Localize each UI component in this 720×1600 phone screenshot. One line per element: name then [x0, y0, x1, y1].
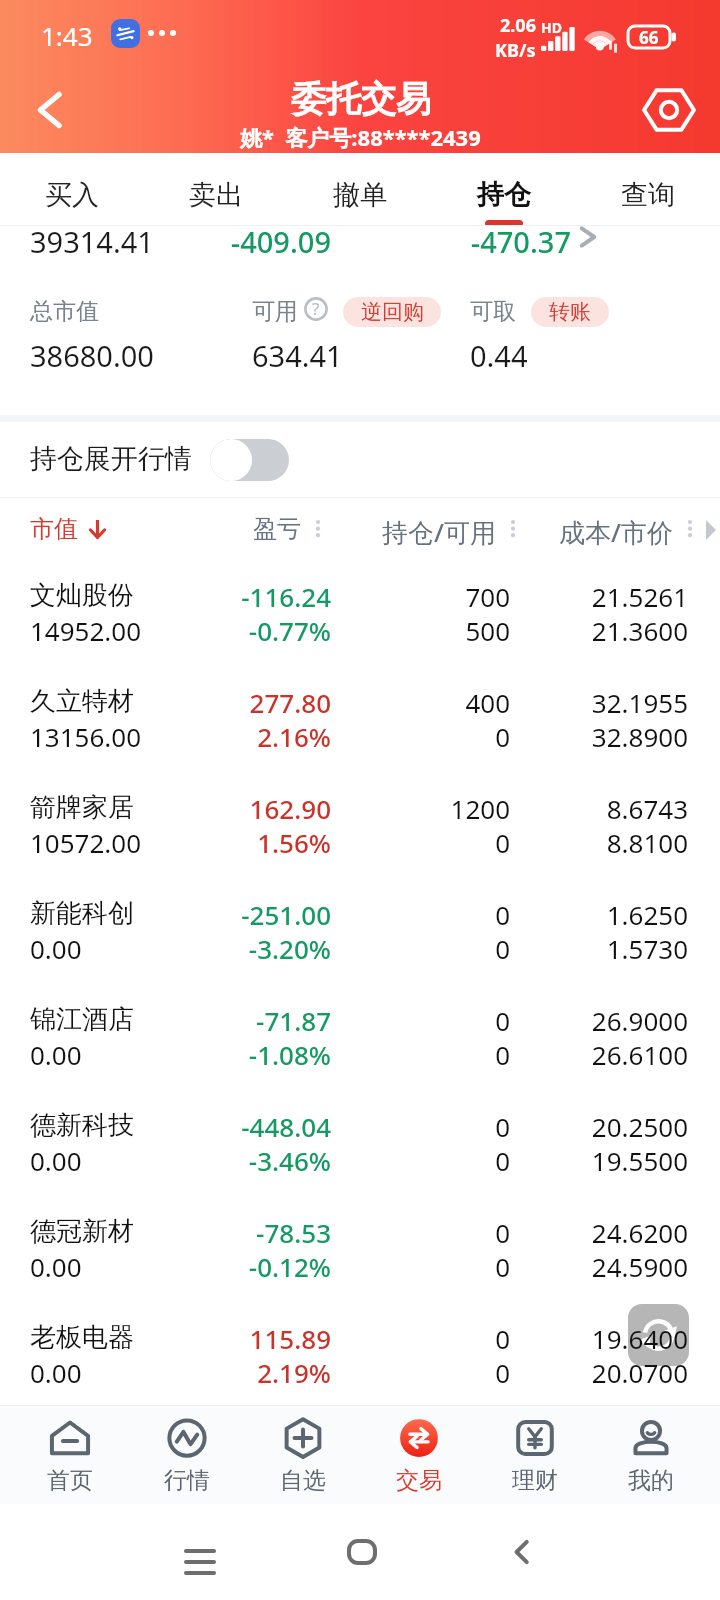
staticText: 634.41 — [252, 336, 343, 370]
staticText: 新能科创 — [30, 897, 134, 929]
button[interactable]: 锦江酒店 — [0, 979, 720, 1085]
staticText: -78.53 — [0, 1215, 331, 1247]
staticText: 0 — [0, 719, 510, 751]
staticText: -116.24 — [0, 579, 331, 611]
staticText: 19.5500 — [0, 1143, 688, 1175]
button[interactable]: 箭牌家居 — [0, 767, 720, 873]
staticText: -409.09 — [0, 222, 331, 256]
staticText: 1.56% — [0, 825, 331, 857]
staticText: 21.5261 — [0, 579, 688, 611]
button[interactable]: 文灿股份 — [0, 555, 720, 661]
staticText: 0.00 — [30, 1037, 82, 1069]
staticText: 0.44 — [470, 336, 528, 370]
button[interactable]: 我的 — [593, 1405, 709, 1504]
staticText: 10572.00 — [30, 825, 142, 857]
staticText: 0 — [0, 1249, 510, 1281]
staticText: 自选 — [280, 1466, 326, 1495]
staticText: 交易 — [396, 1466, 442, 1495]
staticText: 市值 — [30, 514, 78, 544]
staticText: 19.6400 — [0, 1321, 688, 1353]
staticText: 500 — [0, 613, 510, 645]
staticText: -3.20% — [0, 931, 331, 963]
staticText: 0.00 — [30, 931, 82, 963]
staticText: 行情 — [164, 1466, 210, 1495]
button[interactable]: Home — [322, 1504, 402, 1600]
staticText: 1200 — [0, 791, 510, 823]
staticText: 委托交易 — [291, 77, 431, 121]
staticText: 66 — [639, 26, 659, 48]
staticText: 理财 — [512, 1466, 558, 1495]
button[interactable]: 行情 — [128, 1405, 245, 1504]
button[interactable]: Back — [482, 1504, 562, 1600]
staticText: 2.19% — [0, 1355, 331, 1387]
staticText: 14952.00 — [30, 613, 142, 645]
button[interactable]: 逆回购 — [343, 297, 441, 327]
staticText: -470.37 — [0, 222, 571, 256]
staticText: 162.90 — [0, 791, 331, 823]
staticText: 持仓展开行情 — [30, 442, 192, 476]
button[interactable]: 买入 — [0, 153, 144, 225]
button[interactable]: 理财 — [477, 1405, 593, 1504]
staticText: 撤单 — [333, 178, 387, 212]
staticText: 德冠新材 — [30, 1215, 134, 1247]
staticText: KB/s — [495, 38, 536, 63]
button[interactable]: 久立特材 — [0, 661, 720, 767]
staticText: 持仓/可用 — [0, 514, 496, 550]
staticText: 文灿股份 — [30, 579, 134, 611]
staticText: 0 — [0, 931, 510, 963]
staticText: -1.08% — [0, 1037, 331, 1069]
staticText: 总市值 — [30, 297, 99, 326]
staticText: 32.8900 — [0, 719, 688, 751]
staticText: 老板电器 — [30, 1321, 134, 1353]
staticText: -251.00 — [0, 897, 331, 929]
button[interactable]: 查询 — [576, 153, 720, 225]
staticText: 2.06 — [500, 13, 536, 38]
staticText: 可取 — [470, 297, 516, 326]
button[interactable]: 自选 — [245, 1405, 361, 1504]
staticText: 39314.41 — [30, 222, 154, 256]
staticText: 8.8100 — [0, 825, 688, 857]
staticText: 久立特材 — [30, 685, 134, 717]
staticText: 锦江酒店 — [30, 1003, 134, 1035]
staticText: 0.00 — [30, 1249, 82, 1281]
staticText: 持仓 — [477, 178, 531, 212]
staticText: HD — [541, 18, 562, 37]
button[interactable] — [210, 439, 289, 481]
staticText: 21.3600 — [0, 613, 688, 645]
button[interactable]: Back — [20, 79, 82, 141]
button[interactable]: 持仓 — [432, 153, 576, 225]
staticText: 0 — [0, 1355, 510, 1387]
button[interactable]: 转账 — [531, 297, 609, 327]
staticText: 0.00 — [30, 1355, 82, 1387]
staticText: 0 — [0, 1109, 510, 1141]
staticText: 38680.00 — [30, 336, 154, 370]
button[interactable]: 撤单 — [288, 153, 432, 225]
staticText: 26.6100 — [0, 1037, 688, 1069]
button[interactable]: Settings — [642, 83, 696, 137]
staticText: 115.89 — [0, 1321, 331, 1353]
staticText: 盈亏 — [0, 514, 301, 544]
staticText: 400 — [0, 685, 510, 717]
staticText: -3.46% — [0, 1143, 331, 1175]
button[interactable]: 老板电器 — [0, 1297, 720, 1403]
button[interactable]: 新能科创 — [0, 873, 720, 979]
button[interactable]: Refresh — [628, 1304, 689, 1366]
staticText: 24.5900 — [0, 1249, 688, 1281]
button[interactable]: 卖出 — [144, 153, 288, 225]
button[interactable]: Recents — [160, 1504, 240, 1600]
staticText: 逆回购 — [361, 299, 424, 325]
staticText: 箭牌家居 — [30, 791, 134, 823]
staticText: 20.2500 — [0, 1109, 688, 1141]
staticText: -0.12% — [0, 1249, 331, 1281]
staticText: 0 — [0, 1037, 510, 1069]
staticText: 277.80 — [0, 685, 331, 717]
button[interactable]: 德冠新材 — [0, 1191, 720, 1297]
staticText: 1.6250 — [0, 897, 688, 929]
staticText: -71.87 — [0, 1003, 331, 1035]
staticText: 0 — [0, 1321, 510, 1353]
button[interactable]: 首页 — [11, 1405, 128, 1504]
staticText: 20.0700 — [0, 1355, 688, 1387]
staticText: 0 — [0, 1215, 510, 1247]
button[interactable]: 交易 — [361, 1405, 477, 1504]
button[interactable]: 德新科技 — [0, 1085, 720, 1191]
